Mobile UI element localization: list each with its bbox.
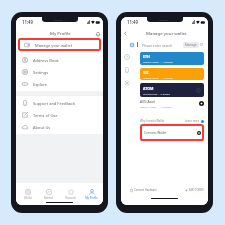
staticText: Rewards — [65, 196, 76, 200]
button[interactable]: Settings — [124, 80, 130, 86]
button[interactable]: ATOM — [140, 83, 204, 97]
staticText: Manage your wallet — [35, 43, 73, 48]
staticText: VIC — [143, 70, 150, 75]
staticText: My Profile — [85, 196, 98, 200]
button[interactable]: Learn more — [185, 119, 204, 123]
staticText: AXS (Axie) — [140, 100, 156, 104]
button[interactable]: Settings — [16, 66, 103, 78]
button[interactable]: VIC — [140, 68, 204, 80]
staticText: Wallet — [24, 196, 32, 200]
button[interactable]: My Profile — [82, 189, 101, 200]
button[interactable]: About Us — [16, 121, 103, 133]
button[interactable]: Why I need a Wallet — [140, 119, 165, 123]
button[interactable]: ADD TOKEN — [185, 188, 204, 192]
button[interactable]: Terms of Use — [16, 109, 103, 121]
button[interactable]: Notifications — [94, 30, 101, 37]
staticText: Explore — [33, 82, 48, 87]
button[interactable]: Explore — [16, 78, 103, 90]
staticText: Cosmos Hub · 3 Tokens — [143, 92, 171, 95]
button[interactable]: Back — [122, 30, 129, 37]
staticText: Connect Hardware — [134, 188, 157, 192]
staticText: Connect Wallet — [144, 131, 167, 135]
staticText: 0x8FC3...2d9A · 3 Tokens — [140, 105, 172, 108]
staticText: ADD TOKEN — [189, 188, 204, 192]
staticText: Manage — [185, 43, 197, 47]
staticText: Please enter search — [142, 43, 173, 47]
button[interactable]: Tokens — [124, 67, 130, 73]
button[interactable]: Address Book — [16, 54, 103, 66]
button[interactable]: Connect Hardware — [130, 188, 157, 192]
button[interactable]: Scan QR — [129, 42, 134, 47]
button[interactable]: ETH — [140, 52, 204, 65]
staticText: Learn more — [185, 119, 200, 123]
staticText: My Profile — [50, 30, 71, 36]
staticText: Support and Feedback — [33, 101, 76, 106]
staticText: Terms of Use — [33, 113, 58, 118]
button[interactable]: Connect Wallet — [140, 124, 204, 141]
staticText: ATOM — [143, 86, 154, 91]
button[interactable]: Wallet — [18, 189, 37, 200]
button[interactable]: Market — [39, 189, 58, 200]
staticText: 0x8FC3...2d9A · 5 Tokens — [143, 76, 173, 79]
staticText: 11:49 — [22, 19, 34, 25]
staticText: Manage your wallet — [146, 30, 187, 36]
button[interactable]: Manage — [183, 42, 199, 48]
button[interactable]: Manage your wallet — [18, 38, 101, 51]
button[interactable]: History — [124, 54, 130, 60]
staticText: 11:49 — [127, 19, 139, 25]
staticText: Address Book — [33, 58, 59, 63]
staticText: About Us — [33, 125, 51, 130]
button[interactable]: Rewards — [61, 189, 80, 200]
staticText: Market — [44, 196, 53, 200]
staticText: ETH — [143, 54, 150, 59]
staticText: Settings — [33, 70, 49, 75]
staticText: 0x8FC3...2d9A · 3 Tokens — [143, 60, 173, 63]
button[interactable]: Support and Feedback — [16, 97, 103, 109]
button[interactable]: AXS (Axie) — [140, 97, 204, 110]
